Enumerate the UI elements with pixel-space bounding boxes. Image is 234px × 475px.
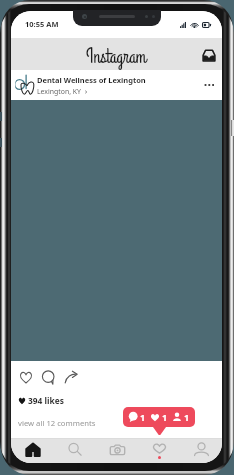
button[interactable]: Share bbox=[60, 365, 83, 387]
staticText: Instagram bbox=[86, 44, 147, 70]
button[interactable]: Search bbox=[54, 439, 96, 463]
button[interactable]: Comment bbox=[37, 365, 60, 387]
button[interactable]: Activity bbox=[138, 439, 180, 463]
button[interactable]: view all 12 comments bbox=[18, 418, 96, 428]
staticText: 1 bbox=[162, 411, 168, 423]
staticText: 394 likes bbox=[28, 395, 65, 406]
staticText: Lexington, KY bbox=[37, 87, 81, 96]
staticText: 10:55 AM bbox=[25, 19, 59, 29]
button[interactable]: More options bbox=[201, 77, 217, 93]
button[interactable]: Home bbox=[11, 439, 54, 463]
button[interactable]: Like bbox=[14, 365, 37, 387]
button[interactable]: Camera bbox=[96, 439, 138, 463]
button[interactable]: Dental Wellness of Lexington bbox=[11, 70, 222, 100]
staticText: 1 bbox=[184, 411, 190, 423]
button[interactable]: 1 bbox=[123, 407, 195, 427]
button[interactable]: Inbox bbox=[200, 45, 218, 63]
staticText: Dental Wellness of Lexington bbox=[37, 75, 146, 85]
staticText: 1 bbox=[140, 411, 146, 423]
button[interactable]: Profile bbox=[180, 439, 222, 463]
